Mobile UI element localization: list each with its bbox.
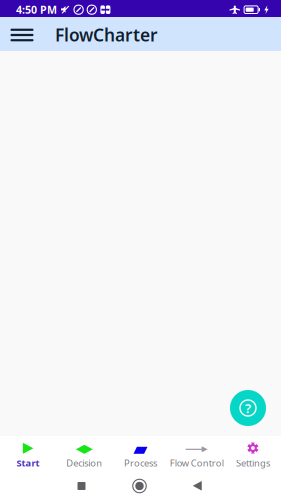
staticText: Decision bbox=[66, 457, 102, 469]
button[interactable]: Settings bbox=[225, 435, 281, 473]
button[interactable]: Flow Control bbox=[169, 435, 225, 473]
button[interactable]: Decision bbox=[56, 435, 112, 473]
staticText: 4:50 PM bbox=[16, 3, 57, 17]
staticText: Process bbox=[124, 457, 157, 469]
staticText: Flow Control bbox=[170, 457, 224, 469]
staticText: FlowCharter bbox=[55, 23, 158, 46]
staticText: Start bbox=[17, 457, 40, 469]
button[interactable]: Home bbox=[111, 472, 167, 500]
button[interactable]: Back bbox=[169, 472, 225, 500]
button[interactable]: Menu bbox=[0, 16, 44, 52]
button[interactable]: Start bbox=[0, 435, 56, 473]
staticText: Settings bbox=[236, 457, 270, 469]
staticText: ? bbox=[245, 399, 251, 417]
button[interactable]: Process bbox=[112, 435, 169, 473]
button[interactable]: Help bbox=[230, 390, 266, 426]
button[interactable]: Recents bbox=[53, 472, 109, 500]
